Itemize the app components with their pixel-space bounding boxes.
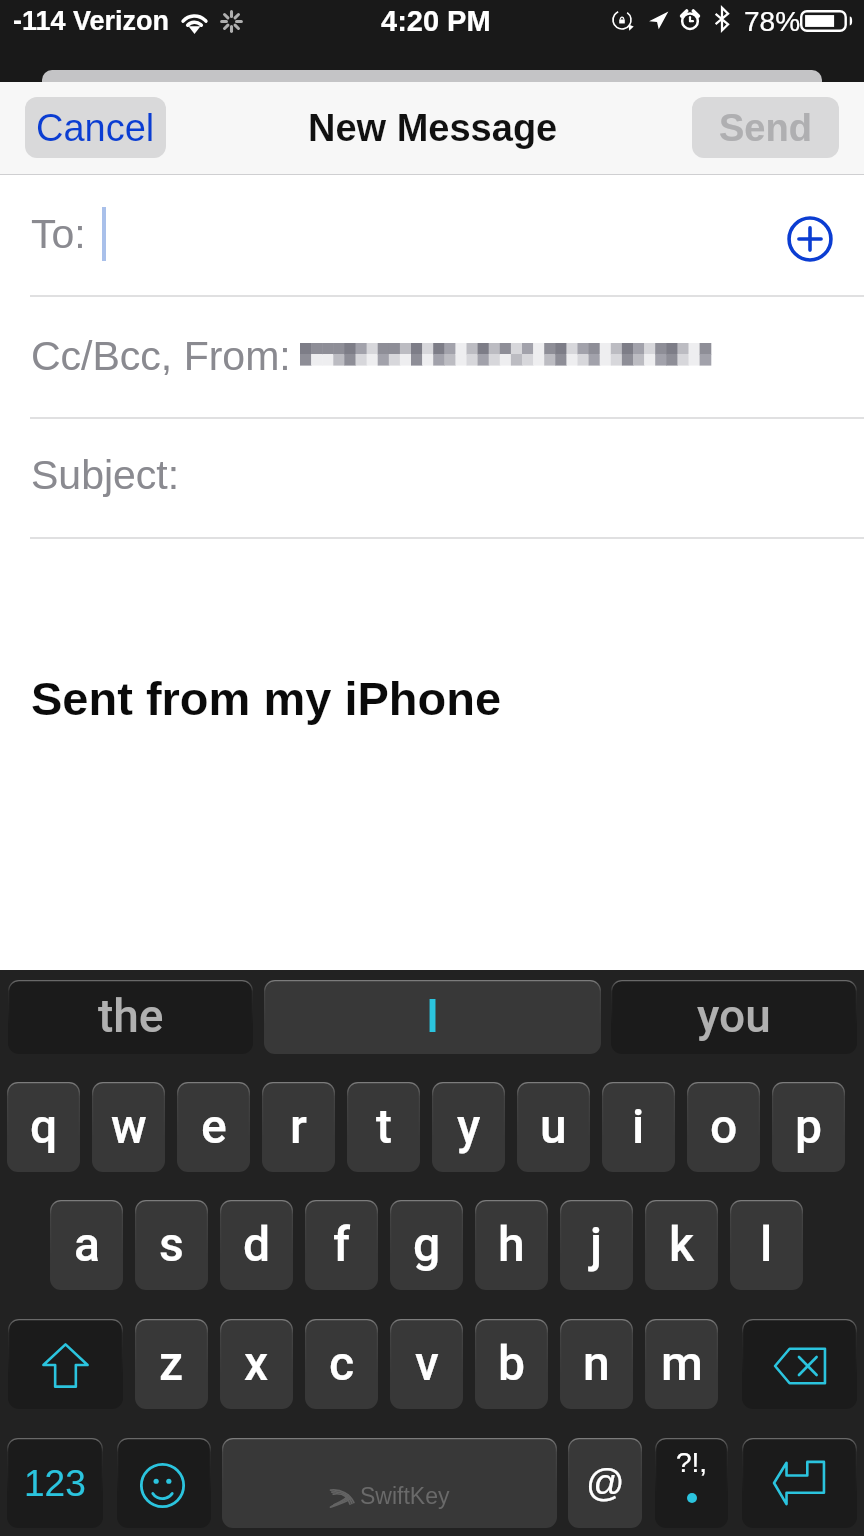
staticText: l: [760, 1216, 773, 1272]
button[interactable]: s: [135, 1200, 208, 1290]
button[interactable]: g: [390, 1200, 463, 1290]
button[interactable]: i: [602, 1082, 675, 1172]
button[interactable]: Subject:: [0, 418, 864, 538]
button[interactable]: x: [220, 1319, 293, 1409]
button[interactable]: Shift: [8, 1319, 123, 1409]
staticText: @: [586, 1462, 625, 1504]
button[interactable]: u: [517, 1082, 590, 1172]
button[interactable]: r: [262, 1082, 335, 1172]
button[interactable]: f: [305, 1200, 378, 1290]
staticText: s: [159, 1216, 184, 1272]
staticText: h: [498, 1216, 525, 1272]
button[interactable]: Cancel: [25, 97, 166, 158]
button[interactable]: To:: [0, 175, 864, 296]
button[interactable]: Add contact: [787, 216, 833, 262]
button[interactable]: p: [772, 1082, 845, 1172]
staticText: k: [669, 1216, 695, 1272]
button[interactable]: Enter: [742, 1438, 857, 1528]
staticText: o: [710, 1098, 738, 1154]
button[interactable]: e: [177, 1082, 250, 1172]
button[interactable]: j: [560, 1200, 633, 1290]
staticText: 4:20 PM: [381, 5, 491, 37]
staticText: I: [426, 989, 439, 1043]
button[interactable]: c: [305, 1319, 378, 1409]
button[interactable]: o: [687, 1082, 760, 1172]
staticText: y: [457, 1098, 481, 1154]
button[interactable]: a: [50, 1200, 123, 1290]
staticText: e: [201, 1098, 227, 1154]
button[interactable]: b: [475, 1319, 548, 1409]
staticText: ?!,: [676, 1447, 708, 1478]
button[interactable]: t: [347, 1082, 420, 1172]
staticText: r: [290, 1098, 307, 1154]
staticText: x: [244, 1335, 269, 1391]
staticText: Sent from my iPhone: [31, 672, 502, 725]
staticText: p: [795, 1098, 823, 1154]
button[interactable]: z: [135, 1319, 208, 1409]
staticText: SwiftKey: [360, 1483, 450, 1509]
staticText: 78%: [744, 6, 801, 37]
staticText: t: [376, 1098, 392, 1154]
button[interactable]: 123: [7, 1438, 103, 1528]
staticText: New Message: [308, 107, 558, 149]
staticText: b: [498, 1335, 526, 1391]
button[interactable]: k: [645, 1200, 718, 1290]
button[interactable]: Space: [222, 1438, 557, 1528]
staticText: w: [111, 1098, 147, 1154]
button[interactable]: h: [475, 1200, 548, 1290]
button[interactable]: q: [7, 1082, 80, 1172]
staticText: q: [30, 1098, 58, 1154]
staticText: m: [661, 1335, 703, 1391]
button[interactable]: Emoji: [117, 1438, 211, 1528]
button[interactable]: @: [568, 1438, 642, 1528]
button[interactable]: w: [92, 1082, 165, 1172]
button[interactable]: Send: [692, 97, 839, 158]
button[interactable]: the: [8, 980, 253, 1054]
button[interactable]: you: [611, 980, 857, 1054]
staticText: Send: [719, 107, 812, 149]
staticText: To:: [31, 211, 86, 257]
button[interactable]: d: [220, 1200, 293, 1290]
button[interactable]: y: [432, 1082, 505, 1172]
staticText: -114 Verizon: [13, 6, 170, 36]
staticText: c: [329, 1335, 355, 1391]
staticText: f: [333, 1216, 351, 1272]
button[interactable]: n: [560, 1319, 633, 1409]
staticText: g: [413, 1216, 441, 1272]
staticText: u: [540, 1098, 567, 1154]
button[interactable]: Cc/Bcc, From:: [0, 296, 864, 418]
button[interactable]: I: [264, 980, 601, 1054]
staticText: the: [98, 989, 164, 1043]
staticText: d: [243, 1216, 271, 1272]
staticText: n: [583, 1335, 610, 1391]
staticText: you: [697, 989, 771, 1043]
staticText: a: [74, 1216, 100, 1272]
staticText: Cc/Bcc, From:: [31, 333, 291, 379]
staticText: Subject:: [31, 452, 180, 498]
button[interactable]: Punctuation: [655, 1438, 728, 1528]
button[interactable]: m: [645, 1319, 718, 1409]
button[interactable]: l: [730, 1200, 803, 1290]
staticText: v: [415, 1335, 439, 1391]
staticText: i: [632, 1098, 645, 1154]
staticText: j: [590, 1216, 603, 1272]
button[interactable]: v: [390, 1319, 463, 1409]
staticText: Cancel: [36, 107, 155, 149]
button[interactable]: Backspace: [742, 1319, 857, 1409]
staticText: 123: [24, 1463, 86, 1504]
staticText: z: [159, 1335, 184, 1391]
